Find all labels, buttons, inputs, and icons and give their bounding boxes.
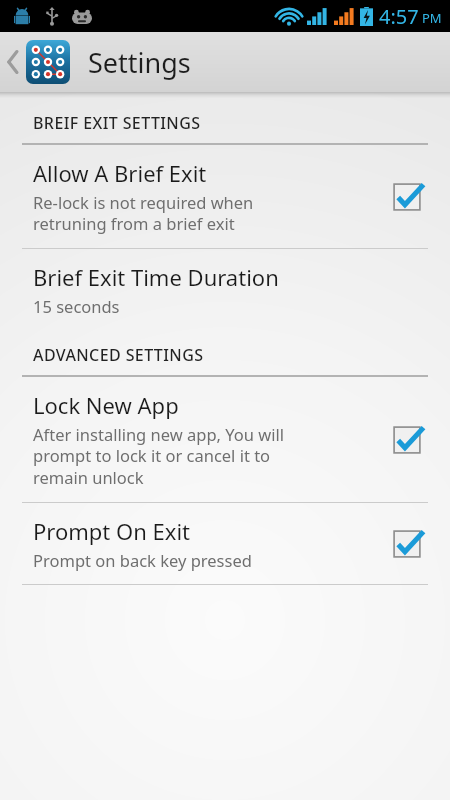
button[interactable]: Prompt On Exit (0, 503, 450, 584)
staticText: After installing new app, You will promp… (33, 423, 284, 489)
staticText: BREIF EXIT SETTINGS (33, 112, 201, 134)
staticText: Re-lock is not required when retruning f… (33, 191, 254, 235)
staticText: 15 seconds (33, 295, 120, 317)
staticText: Allow A Brief Exit (33, 158, 207, 188)
staticText: Brief Exit Time Duration (33, 262, 279, 292)
staticText: Prompt on back key pressed (33, 549, 252, 571)
staticText: 4:57 (379, 3, 419, 30)
button[interactable]: Toggle Lock New App (384, 417, 430, 463)
staticText: Settings (88, 44, 191, 81)
staticText: ADVANCED SETTINGS (33, 344, 204, 366)
staticText: PM (422, 9, 442, 27)
staticText: Prompt On Exit (33, 516, 191, 546)
button[interactable]: Navigate up (0, 32, 74, 92)
button[interactable]: Brief Exit Time Duration (0, 249, 450, 330)
button[interactable]: Toggle Allow A Brief Exit (384, 174, 430, 220)
button[interactable]: Lock New App (0, 377, 450, 502)
button[interactable]: Toggle Prompt On Exit (384, 521, 430, 567)
button[interactable]: Allow A Brief Exit (0, 145, 450, 248)
staticText: Lock New App (33, 390, 179, 420)
